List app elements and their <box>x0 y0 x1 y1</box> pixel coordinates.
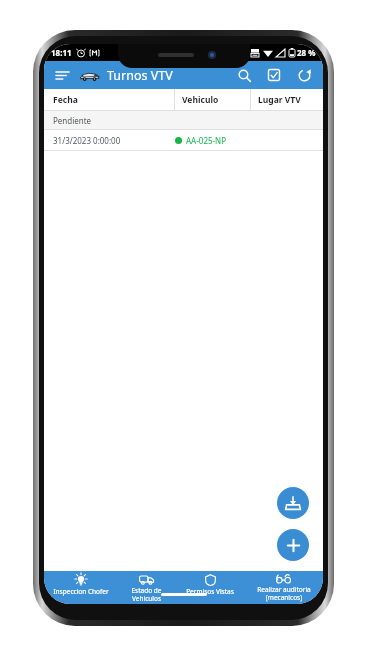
staticText: Pendiente <box>53 115 92 126</box>
staticText: Permisos Vistas <box>186 587 234 596</box>
staticText: AA-025-NP <box>186 135 227 146</box>
button[interactable]: Permisos Vistas <box>176 571 244 604</box>
button[interactable]: Agregar <box>277 529 309 561</box>
button[interactable]: Buscar <box>233 64 255 86</box>
staticText: 18:11 <box>51 47 72 58</box>
staticText: Fecha <box>53 94 78 106</box>
staticText: Turnos VTV <box>107 67 173 84</box>
staticText: 31/3/2023 0:00:00 <box>53 135 121 146</box>
button[interactable]: Seleccionar <box>263 64 285 86</box>
button[interactable]: Realizar auditoria (mecanicos) <box>244 571 323 604</box>
staticText: Estado de Vehiculos <box>131 586 162 603</box>
button[interactable]: Pendiente <box>44 111 323 130</box>
button[interactable]: 31/3/2023 0:00:00 <box>44 130 323 151</box>
staticText: Vehiculo <box>182 94 219 106</box>
button[interactable]: Menu <box>52 65 72 85</box>
button[interactable]: Estado de Vehiculos <box>117 571 176 604</box>
button[interactable]: Inspeccion Chofer <box>44 571 117 604</box>
button[interactable]: Descargar <box>277 487 309 519</box>
button[interactable]: Actualizar <box>293 64 315 86</box>
staticText: Realizar auditoria (mecanicos) <box>257 585 311 602</box>
staticText: Inspeccion Chofer <box>53 587 109 596</box>
staticText: 28 % <box>297 47 316 58</box>
staticText: Lugar VTV <box>258 94 301 106</box>
